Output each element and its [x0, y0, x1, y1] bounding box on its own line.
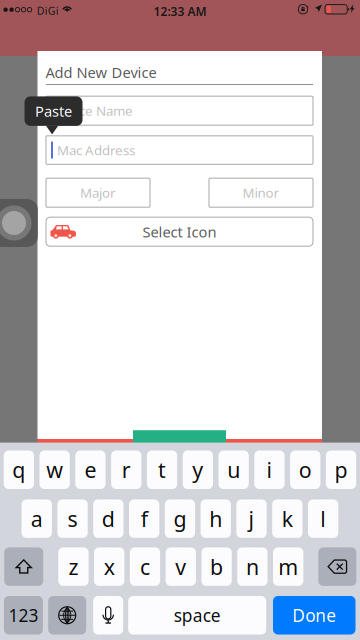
staticText: g: [173, 504, 186, 533]
staticText: q: [12, 456, 25, 484]
button[interactable]: [133, 430, 226, 443]
button[interactable]: Next keyboard: [48, 596, 86, 634]
button[interactable]: p: [326, 450, 356, 489]
staticText: b: [210, 552, 223, 581]
button[interactable]: Major: [46, 178, 150, 207]
staticText: Device Name: [52, 102, 133, 119]
button[interactable]: Shift: [4, 547, 43, 586]
button[interactable]: c: [130, 547, 160, 586]
staticText: f: [141, 504, 148, 533]
button[interactable]: b: [201, 547, 232, 586]
staticText: k: [282, 504, 293, 533]
button[interactable]: v: [166, 547, 196, 586]
staticText: h: [209, 504, 222, 533]
button[interactable]: 123: [4, 596, 43, 634]
button[interactable]: e: [75, 450, 106, 489]
staticText: 12:33 AM: [153, 3, 206, 19]
staticText: 123: [8, 604, 38, 627]
button[interactable]: m: [273, 547, 303, 586]
staticText: Select Icon: [142, 222, 216, 241]
staticText: y: [192, 456, 203, 484]
button[interactable]: Dictate: [93, 596, 123, 634]
button[interactable]: Mac Address: [46, 136, 313, 164]
button[interactable]: Delete: [318, 547, 356, 586]
staticText: u: [227, 456, 240, 484]
staticText: s: [67, 504, 77, 533]
staticText: DiGi: [37, 4, 59, 18]
button[interactable]: Paste: [24, 96, 82, 134]
staticText: w: [46, 456, 63, 484]
button[interactable]: r: [111, 450, 141, 489]
button[interactable]: x: [94, 547, 124, 586]
button[interactable]: t: [147, 450, 177, 489]
button[interactable]: h: [201, 499, 231, 538]
staticText: Paste: [35, 101, 72, 121]
button[interactable]: z: [58, 547, 88, 586]
staticText: c: [140, 552, 150, 581]
button[interactable]: q: [4, 450, 34, 489]
staticText: e: [84, 456, 96, 484]
staticText: Add New Device: [45, 62, 156, 82]
button[interactable]: g: [165, 499, 195, 538]
button[interactable]: AssistiveTouch: [0, 199, 38, 247]
button[interactable]: d: [93, 499, 123, 538]
button[interactable]: o: [290, 450, 320, 489]
button[interactable]: w: [39, 450, 70, 489]
staticText: Mac Address: [57, 141, 135, 159]
button[interactable]: j: [236, 499, 267, 538]
button[interactable]: Device Name: [46, 96, 313, 125]
button[interactable]: u: [218, 450, 249, 489]
button[interactable]: a: [22, 499, 52, 538]
staticText: r: [122, 456, 131, 484]
staticText: Done: [292, 604, 336, 627]
button[interactable]: Minor: [209, 178, 313, 207]
staticText: Major: [80, 184, 116, 201]
staticText: n: [246, 552, 259, 581]
staticText: a: [31, 504, 43, 533]
button[interactable]: i: [254, 450, 285, 489]
staticText: space: [174, 604, 221, 627]
staticText: p: [335, 456, 348, 484]
staticText: i: [266, 456, 272, 484]
staticText: x: [104, 552, 115, 581]
button[interactable]: k: [272, 499, 302, 538]
staticText: t: [158, 456, 166, 484]
staticText: j: [249, 504, 255, 533]
button[interactable]: l: [308, 499, 338, 538]
staticText: m: [278, 552, 298, 581]
button[interactable]: s: [57, 499, 88, 538]
staticText: o: [299, 456, 312, 484]
button[interactable]: Done: [273, 596, 355, 634]
button[interactable]: y: [183, 450, 213, 489]
staticText: d: [102, 504, 115, 533]
staticText: l: [320, 504, 326, 533]
staticText: v: [175, 552, 186, 581]
button[interactable]: n: [237, 547, 267, 586]
button[interactable]: Select Icon: [46, 217, 313, 246]
button[interactable]: space: [128, 596, 266, 634]
staticText: Minor: [242, 184, 279, 201]
staticText: z: [68, 552, 78, 581]
button[interactable]: f: [129, 499, 159, 538]
